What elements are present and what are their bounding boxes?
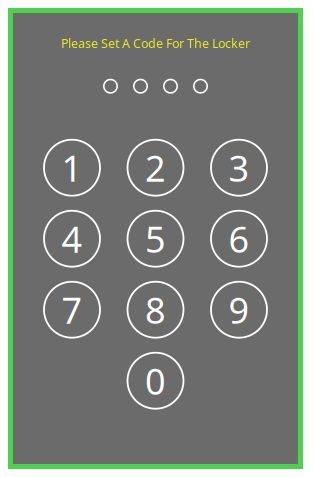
- staticText: 4: [61, 215, 82, 263]
- button[interactable]: 6: [211, 211, 267, 267]
- button[interactable]: 2: [127, 140, 183, 196]
- staticText: 6: [228, 215, 249, 263]
- staticText: 2: [145, 144, 166, 192]
- staticText: Please Set A Code For The Locker: [61, 35, 250, 52]
- button[interactable]: 4: [44, 211, 100, 267]
- staticText: 7: [61, 286, 82, 334]
- staticText: 8: [145, 286, 166, 334]
- button[interactable]: 0: [127, 353, 183, 409]
- staticText: 1: [61, 144, 82, 192]
- staticText: 9: [228, 286, 249, 334]
- staticText: 0: [145, 357, 166, 405]
- button[interactable]: 5: [127, 211, 183, 267]
- button[interactable]: 3: [211, 140, 267, 196]
- button[interactable]: 7: [44, 282, 100, 338]
- button[interactable]: 8: [127, 282, 183, 338]
- button[interactable]: 1: [44, 140, 100, 196]
- staticText: 3: [228, 144, 249, 192]
- staticText: 5: [145, 215, 166, 263]
- button[interactable]: 9: [211, 282, 267, 338]
